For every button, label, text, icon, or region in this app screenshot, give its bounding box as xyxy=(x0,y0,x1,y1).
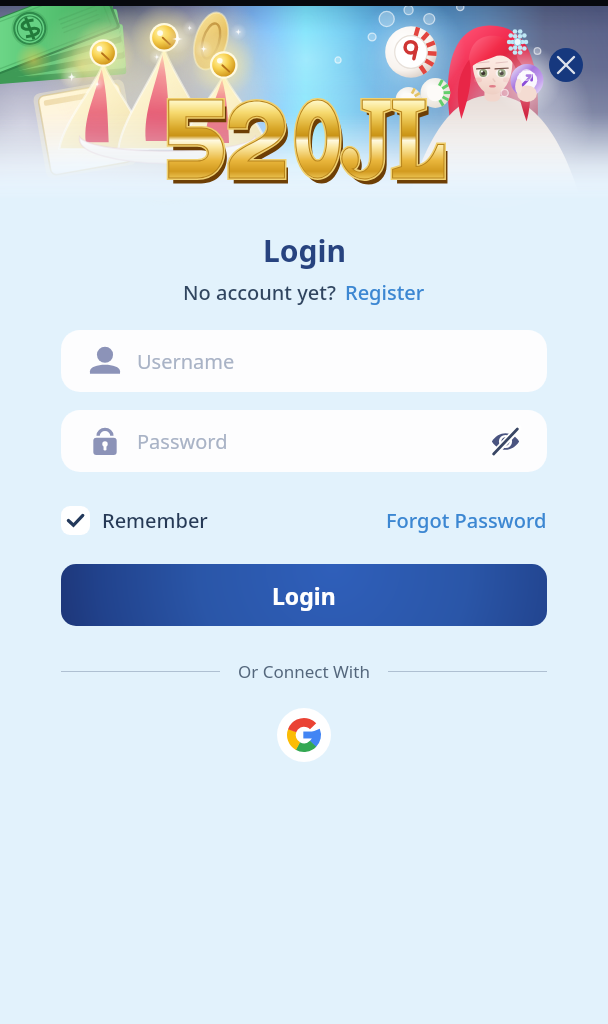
button[interactable]: Register xyxy=(345,279,425,306)
button[interactable]: Login xyxy=(61,564,547,626)
staticText: No account yet? xyxy=(183,279,336,306)
staticText: Remember xyxy=(102,507,208,534)
staticText: Register xyxy=(345,279,425,306)
button[interactable]: Password xyxy=(61,410,547,472)
button[interactable]: Remember xyxy=(61,506,208,535)
button[interactable]: Sign in with Google xyxy=(277,708,331,762)
button[interactable]: Forgot Password xyxy=(386,507,547,534)
staticText: Forgot Password xyxy=(386,507,547,534)
button[interactable]: Close xyxy=(549,48,583,82)
staticText: Login xyxy=(263,230,346,271)
button[interactable]: Show password xyxy=(489,425,521,457)
staticText: Username xyxy=(137,348,235,375)
staticText: Or Connect With xyxy=(238,660,370,683)
button[interactable]: Username xyxy=(61,330,547,392)
staticText: Password xyxy=(137,428,228,455)
staticText: Login xyxy=(272,580,336,611)
